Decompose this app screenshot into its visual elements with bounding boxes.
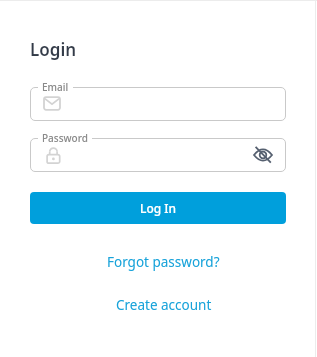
staticText: Password [42,131,88,145]
button[interactable]: Email [30,87,286,121]
button[interactable]: Log In [30,192,286,224]
staticText: Forgot password? [107,253,220,271]
button[interactable]: Create account [112,292,216,318]
staticText: Login [30,38,77,61]
staticText: Email [42,80,69,94]
button[interactable]: Password [30,138,286,172]
button[interactable] [251,143,275,167]
staticText: Log In [140,200,177,216]
button[interactable]: Forgot password? [103,249,224,275]
staticText: Create account [116,296,212,314]
